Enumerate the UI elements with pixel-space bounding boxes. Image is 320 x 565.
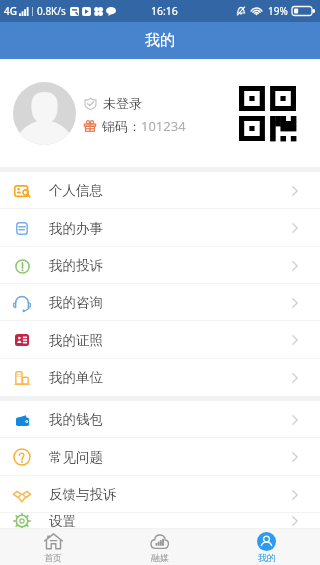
staticText: 我的钱包 [49, 411, 103, 428]
staticText: 我的 [145, 31, 175, 50]
staticText: 设置 [49, 513, 76, 529]
staticText: 16:16 [151, 4, 178, 18]
button[interactable]: 常见问题 [0, 438, 320, 476]
button[interactable]: 我的投诉 [0, 247, 320, 284]
button[interactable]: 我的办事 [0, 209, 320, 247]
staticText: 我的证照 [49, 332, 103, 349]
button[interactable]: 我的钱包 [0, 401, 320, 438]
staticText: 我的 [258, 552, 276, 563]
staticText: 4G [4, 4, 17, 18]
staticText: 我的咨询 [49, 294, 103, 311]
button[interactable]: 我的 [213, 529, 320, 565]
button[interactable]: 我的证照 [0, 321, 320, 359]
staticText: 我的单位 [49, 369, 103, 386]
staticText: 常见问题 [49, 449, 103, 466]
button[interactable]: 我的咨询 [0, 284, 320, 321]
button[interactable]: 未登录 [0, 59, 320, 167]
staticText: 19% [268, 4, 288, 18]
staticText: 未登录 [103, 95, 142, 111]
staticText: 锦码： [102, 118, 141, 134]
button[interactable]: 二维码 [232, 78, 302, 148]
staticText: 101234 [141, 117, 186, 135]
button[interactable]: 反馈与投诉 [0, 476, 320, 513]
staticText: 反馈与投诉 [49, 486, 117, 503]
button[interactable]: 个人信息 [0, 172, 320, 209]
staticText: 我的投诉 [49, 257, 103, 274]
button[interactable]: 我的单位 [0, 359, 320, 396]
staticText: 我的办事 [49, 220, 103, 237]
staticText: 首页 [44, 552, 62, 563]
staticText: 0.8K/s [37, 4, 66, 18]
staticText: 个人信息 [49, 182, 103, 199]
staticText: 融媒 [151, 552, 169, 563]
button[interactable]: 设置 [0, 513, 320, 529]
button[interactable]: 首页 [0, 529, 106, 565]
button[interactable]: 融媒 [106, 529, 213, 565]
